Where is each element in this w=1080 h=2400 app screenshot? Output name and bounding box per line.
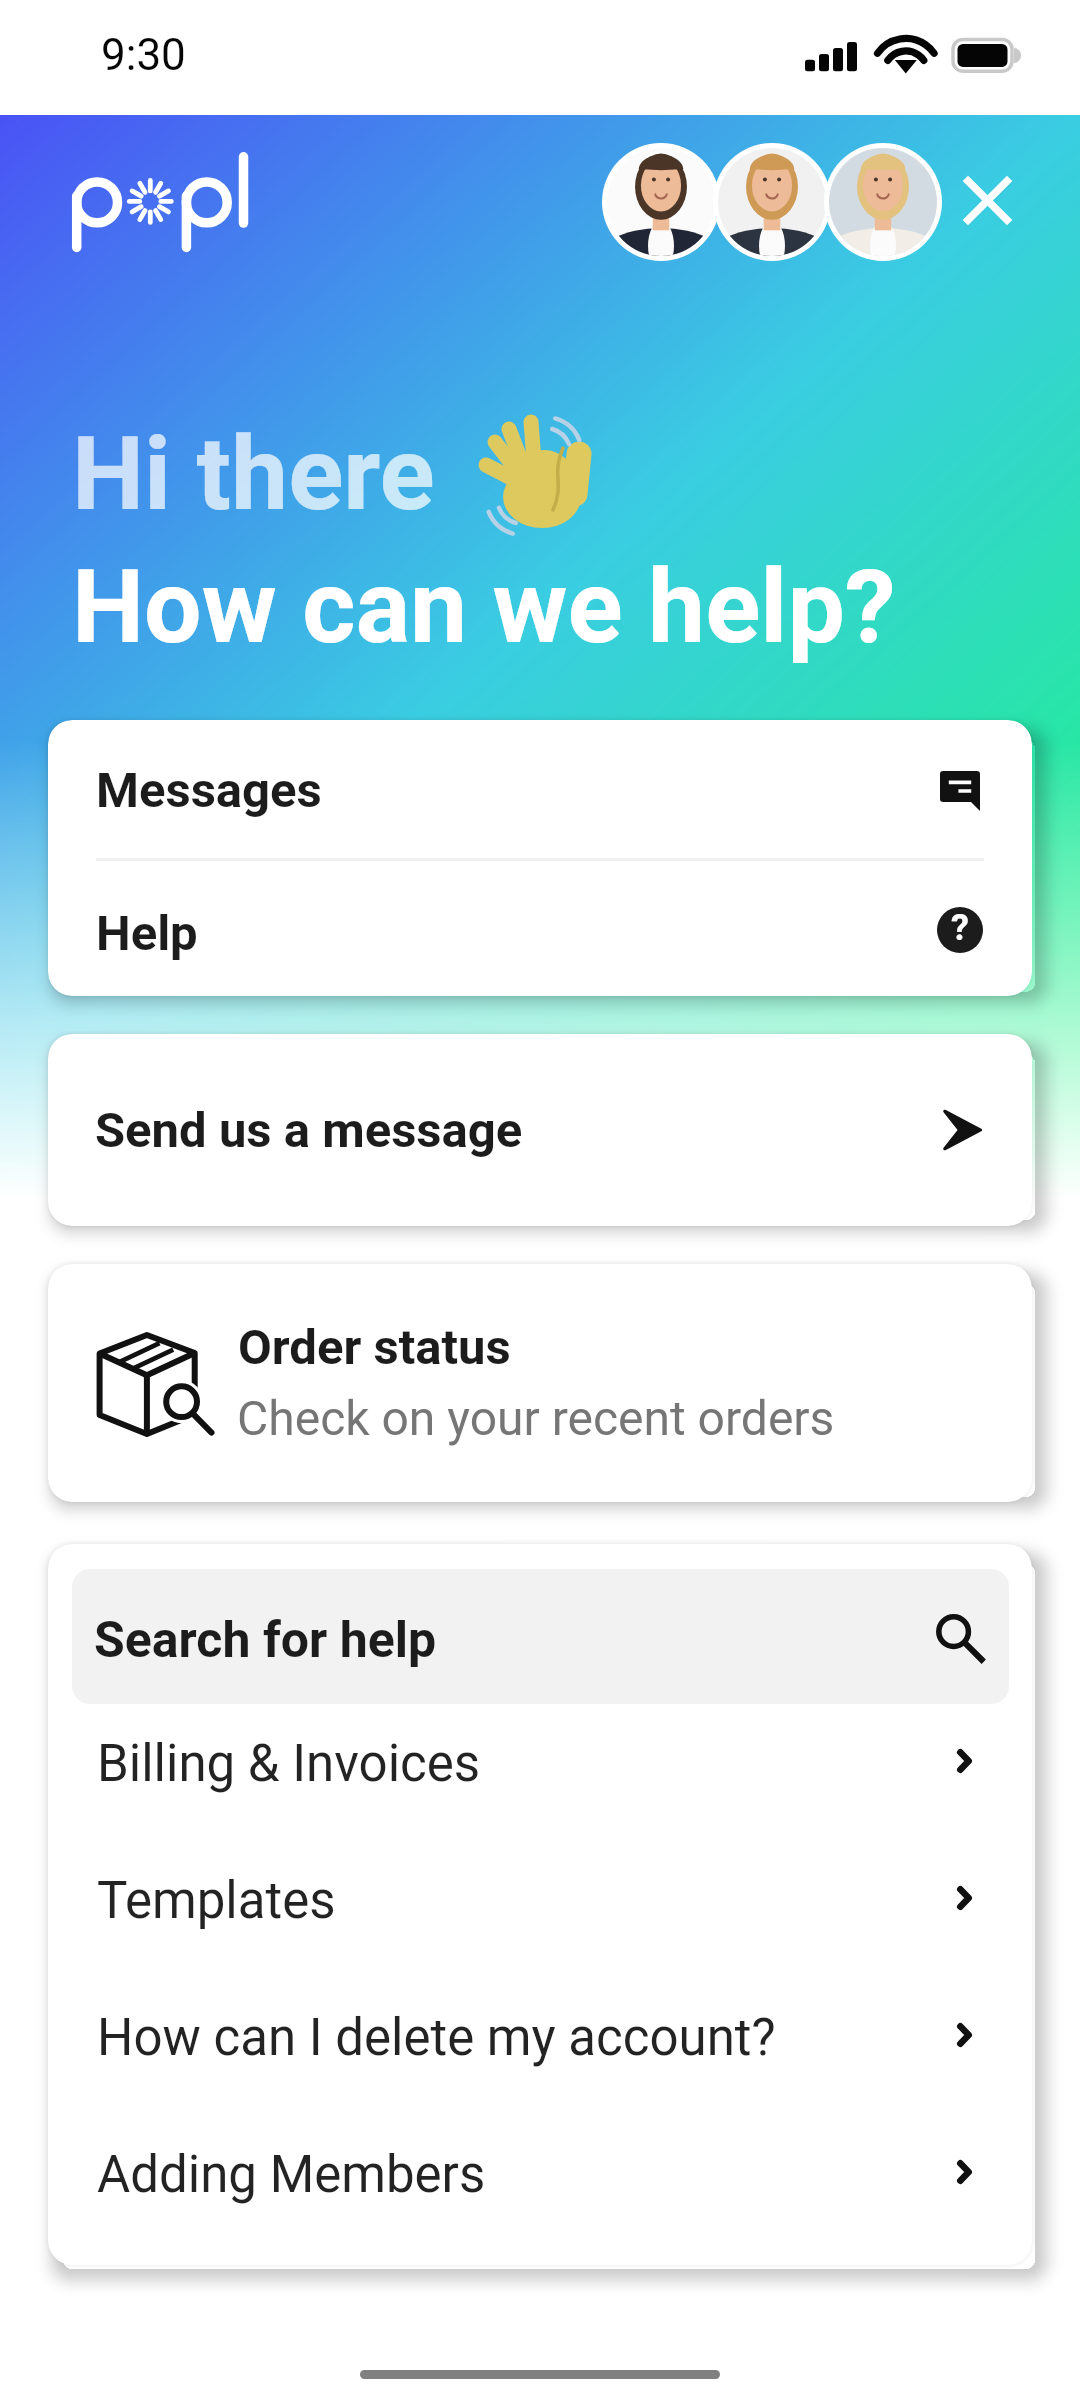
staticText: Billing & Invoices: [97, 1734, 481, 1794]
button[interactable]: Close: [943, 156, 1031, 244]
button[interactable]: Billing & Invoices: [48, 1703, 1032, 1840]
button[interactable]: Help: [48, 861, 1032, 996]
staticText: Adding Members: [97, 2145, 486, 2205]
staticText: Search for help: [94, 1611, 437, 1670]
button[interactable]: How can I delete my account?: [48, 1977, 1032, 2114]
staticText: Hi there: [72, 414, 435, 534]
button[interactable]: Adding Members: [48, 2114, 1032, 2251]
button[interactable]: Messages: [48, 720, 1032, 859]
staticText: Send us a message: [95, 1102, 523, 1159]
staticText: Check on your recent orders: [237, 1390, 835, 1446]
staticText: How can I delete my account?: [97, 2008, 776, 2068]
button[interactable]: Team member: [824, 143, 942, 261]
staticText: Templates: [97, 1871, 336, 1931]
staticText: ?: [951, 907, 969, 949]
staticText: Help: [96, 905, 198, 962]
button[interactable]: Order status: [48, 1264, 1032, 1502]
button[interactable]: Send us a message: [48, 1034, 1032, 1226]
staticText: How can we help?: [72, 547, 896, 667]
staticText: 9:30: [101, 29, 186, 81]
staticText: Messages: [96, 762, 322, 819]
button[interactable]: Templates: [48, 1840, 1032, 1977]
button[interactable]: Team member: [602, 143, 720, 261]
staticText: Order status: [238, 1319, 511, 1376]
button[interactable]: Team member: [713, 143, 831, 261]
button[interactable]: Search for help: [72, 1569, 1009, 1704]
